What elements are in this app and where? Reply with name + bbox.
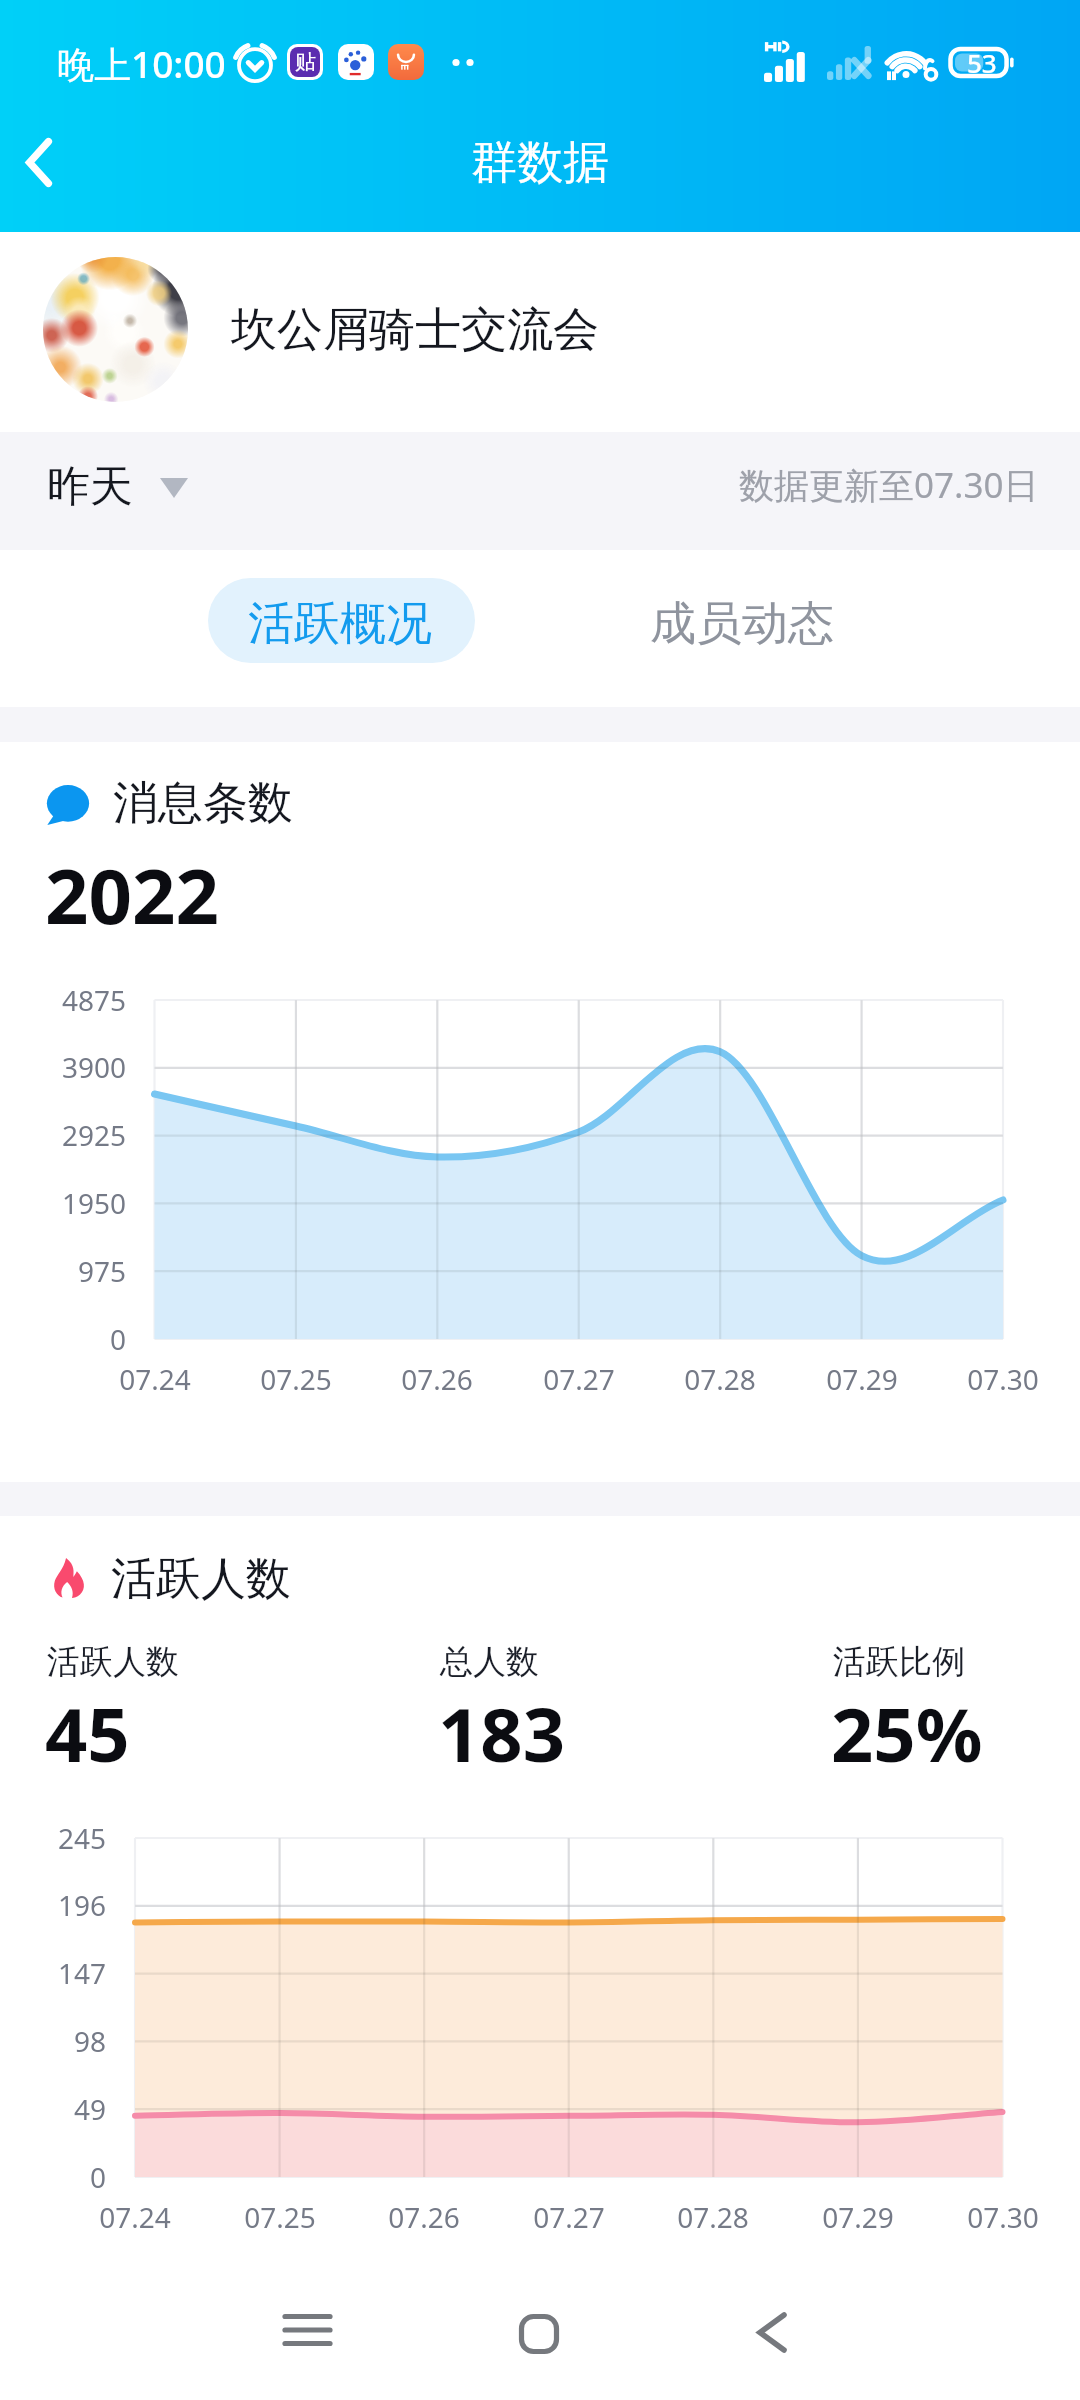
staticText: 196: [0, 1886, 106, 1924]
staticText: 07.25: [180, 2198, 380, 2236]
staticText: 07.29: [762, 1360, 962, 1398]
staticText: 数据更新至07.30日: [739, 461, 1039, 509]
staticText: 总人数: [440, 1641, 539, 1683]
staticText: 07.27: [479, 1360, 679, 1398]
staticText: 07.28: [613, 2198, 813, 2236]
staticText: 147: [0, 1954, 106, 1992]
staticText: 活跃人数: [47, 1641, 179, 1683]
staticText: 活跃人数: [111, 1551, 291, 1608]
staticText: 0: [0, 2158, 106, 2196]
staticText: 07.25: [196, 1360, 396, 1398]
staticText: 贴: [295, 49, 316, 75]
button[interactable]: 活跃概况: [208, 578, 475, 663]
staticText: 25%: [831, 1683, 983, 1784]
staticText: 975: [0, 1252, 126, 1290]
staticText: 07.30: [903, 2198, 1080, 2236]
staticText: 245: [0, 1819, 106, 1857]
staticText: 0: [0, 1320, 126, 1358]
staticText: 07.30: [903, 1360, 1080, 1398]
staticText: 坎公屑骑士交流会: [231, 301, 599, 359]
staticText: 07.26: [337, 1360, 537, 1398]
staticText: 183: [438, 1683, 565, 1784]
staticText: 53: [967, 45, 997, 76]
button[interactable]: Recent apps: [192, 2250, 424, 2400]
button[interactable]: Home: [424, 2250, 656, 2400]
button[interactable]: 成员动态: [608, 578, 875, 663]
staticText: 2022: [45, 843, 219, 947]
staticText: 07.24: [35, 2198, 235, 2236]
button[interactable]: 昨天: [30, 438, 205, 544]
button[interactable]: 坎公屑骑士交流会: [0, 232, 1080, 432]
staticText: 活跃比例: [833, 1641, 965, 1683]
staticText: 成员动态: [650, 595, 834, 653]
staticText: 07.24: [55, 1360, 255, 1398]
staticText: 2925: [0, 1116, 126, 1154]
staticText: 49: [0, 2090, 106, 2128]
staticText: 晚上10:00: [57, 38, 226, 89]
button[interactable]: Back: [0, 112, 110, 232]
staticText: 3900: [0, 1048, 126, 1086]
staticText: 98: [0, 2022, 106, 2060]
staticText: 45: [45, 1683, 130, 1784]
staticText: 4875: [0, 981, 126, 1019]
staticText: 07.29: [758, 2198, 958, 2236]
button[interactable]: Back: [656, 2250, 888, 2400]
staticText: 07.28: [620, 1360, 820, 1398]
staticText: 昨天: [47, 460, 133, 514]
staticText: 消息条数: [113, 775, 293, 832]
staticText: 07.26: [324, 2198, 524, 2236]
staticText: 07.27: [469, 2198, 669, 2236]
staticText: 群数据: [471, 134, 609, 192]
staticText: 活跃概况: [248, 595, 432, 653]
staticText: 1950: [0, 1184, 126, 1222]
